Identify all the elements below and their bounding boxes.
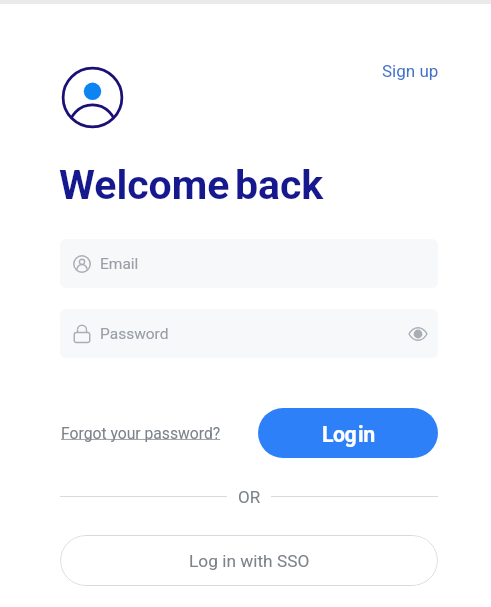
- staticText: Email: [100, 255, 139, 273]
- button[interactable]: Account: [62, 67, 123, 128]
- staticText: Forgot your password?: [61, 424, 221, 442]
- staticText: OR: [238, 487, 261, 507]
- staticText: Welcome: [59, 161, 230, 209]
- button[interactable]: Show password: [409, 325, 427, 343]
- button[interactable]: Log in with SSO: [60, 535, 438, 586]
- staticText: Log: [322, 422, 357, 447]
- button[interactable]: Password: [60, 309, 438, 358]
- button[interactable]: Log: [258, 408, 438, 458]
- staticText: in: [358, 422, 375, 447]
- staticText: Password: [100, 325, 169, 343]
- staticText: Log in with SSO: [189, 551, 310, 571]
- button[interactable]: Sign up: [382, 61, 439, 81]
- button[interactable]: Email: [60, 239, 438, 288]
- staticText: Sign up: [382, 61, 439, 81]
- staticText: back: [235, 161, 324, 209]
- button[interactable]: Forgot your password?: [61, 424, 221, 442]
